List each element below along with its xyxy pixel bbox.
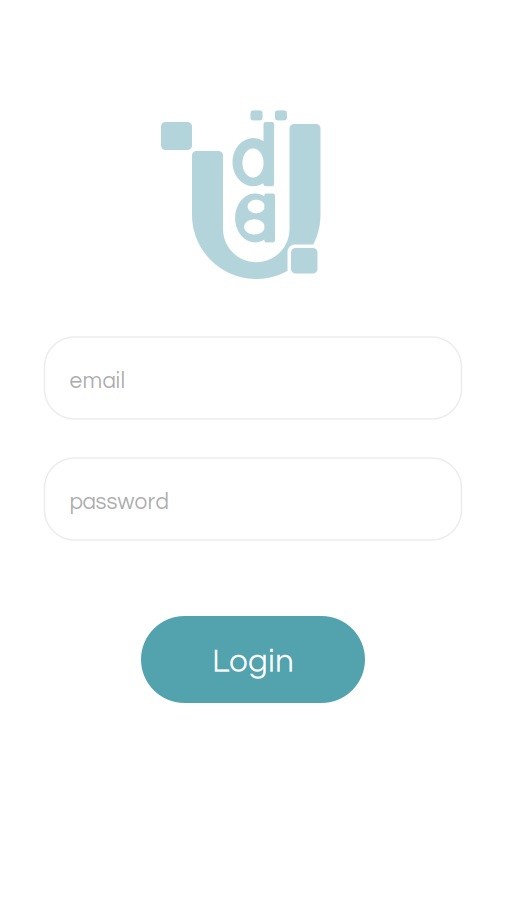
button[interactable]: email [44,337,461,419]
staticText: password [69,490,168,514]
button[interactable]: Login [141,616,365,703]
staticText: email [69,369,125,393]
staticText: Login [212,644,294,679]
button[interactable]: password [44,458,461,540]
